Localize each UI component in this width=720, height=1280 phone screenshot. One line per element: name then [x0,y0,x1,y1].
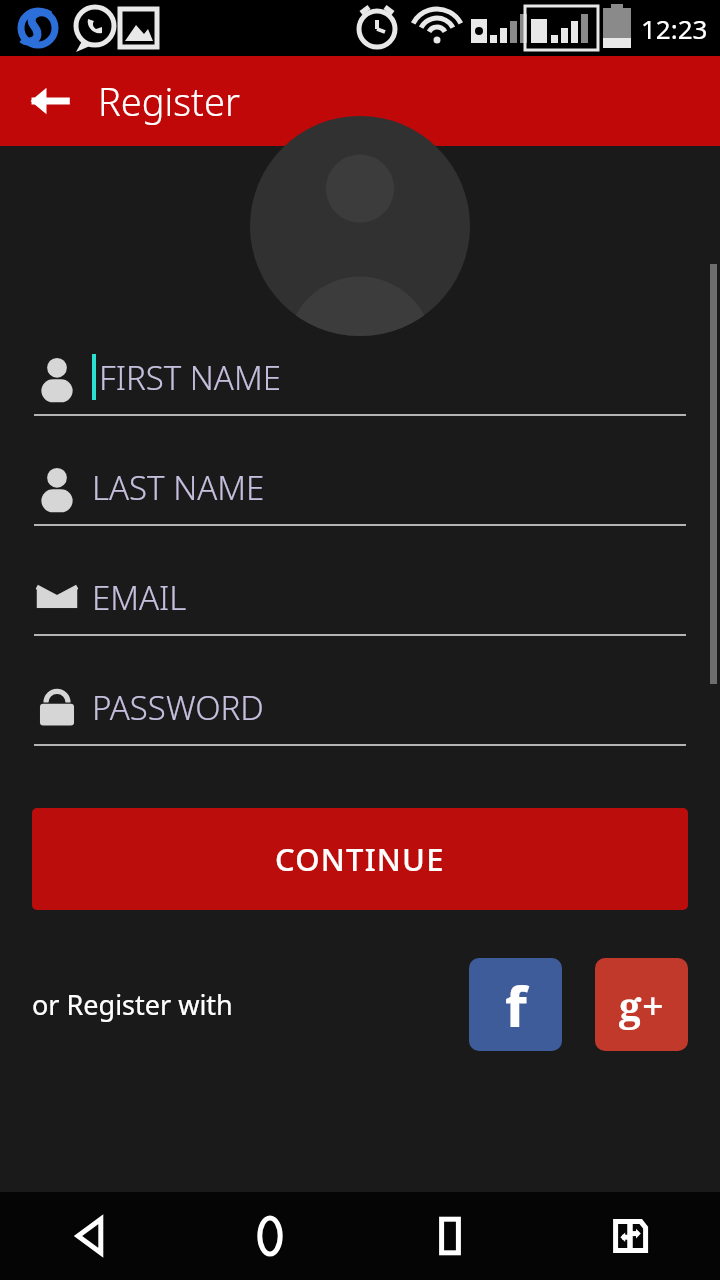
staticText: FIRST NAME [99,355,281,400]
button[interactable]: Switch apps [540,1192,720,1280]
staticText: LAST NAME [92,465,265,510]
button[interactable]: EMAIL [34,566,686,636]
button[interactable]: Profile photo [250,116,470,336]
button[interactable]: Register with Google Plus [595,958,688,1051]
staticText: Register [98,75,240,127]
button[interactable]: PASSWORD [34,676,686,746]
button[interactable]: FIRST NAME [34,346,686,416]
button[interactable]: Back [0,1192,180,1280]
staticText: PASSWORD [92,685,264,730]
button[interactable]: CONTINUE [32,808,688,910]
staticText: f [505,967,527,1043]
staticText: g+ [619,978,664,1032]
button[interactable]: Register with Facebook [469,958,562,1051]
staticText: 12:23 [641,11,708,46]
button[interactable]: Home [180,1192,360,1280]
staticText: CONTINUE [275,838,445,880]
button[interactable]: Recent apps [360,1192,540,1280]
staticText: EMAIL [92,575,187,620]
button[interactable]: Back [20,71,80,131]
staticText: or Register with [32,986,233,1023]
button[interactable]: LAST NAME [34,456,686,526]
